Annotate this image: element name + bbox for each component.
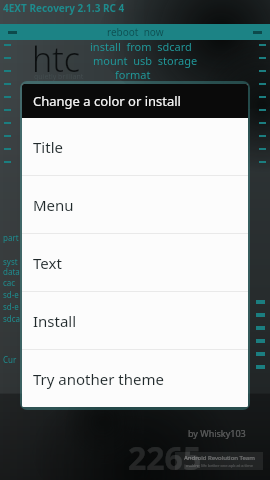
staticText: syst <box>3 256 18 267</box>
staticText: quietly brilliant <box>34 72 84 82</box>
staticText: Try another theme <box>33 369 164 389</box>
staticText: sdca <box>3 313 21 324</box>
staticText: data <box>3 266 20 277</box>
staticText: format <box>115 67 151 82</box>
button[interactable]: reboot now <box>0 24 270 40</box>
staticText: sd-e <box>3 301 19 312</box>
staticText: part <box>3 232 19 243</box>
staticText: 2265 <box>128 436 202 480</box>
staticText: Title <box>33 137 63 157</box>
staticText: 4EXT Recovery 2.1.3 RC 4 <box>3 1 125 15</box>
staticText: by Whisky103 <box>188 427 246 439</box>
staticText: Android Revolution Team <box>184 454 255 462</box>
staticText: reboot now <box>107 25 164 39</box>
staticText: mount usb storage <box>93 53 198 68</box>
staticText: Text <box>33 253 62 273</box>
staticText: making life better one apk at a time <box>186 463 253 468</box>
staticText: Install <box>33 311 77 331</box>
staticText: install from sdcard <box>90 39 192 54</box>
staticText: sd-e <box>3 289 19 300</box>
staticText: Menu <box>33 195 74 215</box>
button[interactable]: Menu <box>22 176 248 234</box>
staticText: cac <box>3 277 16 288</box>
staticText: Cur <box>3 354 17 365</box>
button[interactable]: Try another theme <box>22 350 248 407</box>
button[interactable]: Install <box>22 292 248 350</box>
staticText: Change a color or install <box>33 92 181 110</box>
button[interactable]: Title <box>22 118 248 176</box>
staticText: htc <box>32 36 80 82</box>
button[interactable]: Text <box>22 234 248 292</box>
